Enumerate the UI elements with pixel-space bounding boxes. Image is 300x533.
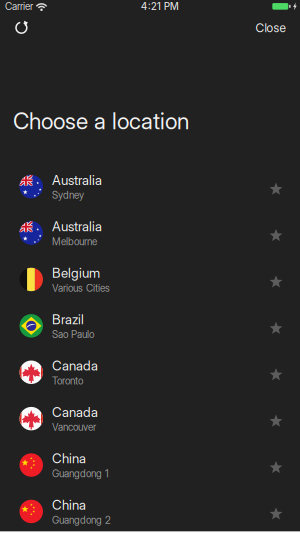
staticText: Brazil — [52, 311, 84, 327]
staticText: Choose a location — [13, 107, 189, 135]
button[interactable]: China — [0, 442, 300, 488]
button[interactable]: Close — [241, 14, 300, 41]
staticText: Canada — [52, 404, 98, 420]
staticText: China — [52, 497, 86, 513]
staticText: Canada — [52, 358, 98, 374]
staticText: Carrier — [5, 0, 33, 12]
button[interactable]: Brazil — [0, 303, 300, 349]
staticText: Toronto — [52, 375, 83, 387]
staticText: Vancouver — [52, 421, 96, 433]
button[interactable]: Refresh — [0, 15, 39, 41]
staticText: Australia — [52, 172, 102, 188]
button[interactable]: Australia — [0, 163, 300, 210]
staticText: Guangdong 1 — [52, 468, 109, 480]
staticText: Belgium — [52, 265, 100, 281]
button[interactable]: China — [0, 488, 300, 533]
button[interactable]: Canada — [0, 349, 300, 395]
button[interactable]: Australia — [0, 210, 300, 256]
staticText: Melbourne — [52, 236, 97, 248]
staticText: Close — [255, 21, 285, 35]
staticText: Sao Paulo — [52, 328, 94, 340]
staticText: Guangdong 2 — [52, 514, 111, 526]
button[interactable]: Belgium — [0, 256, 300, 303]
staticText: Various Cities — [52, 282, 110, 294]
button[interactable]: Canada — [0, 395, 300, 442]
staticText: Sydney — [52, 189, 84, 201]
staticText: 4:21 PM — [141, 0, 179, 12]
staticText: Australia — [52, 218, 102, 234]
staticText: China — [52, 450, 86, 466]
